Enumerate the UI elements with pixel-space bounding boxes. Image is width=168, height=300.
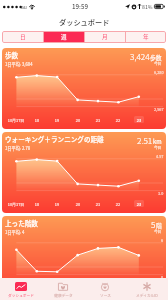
staticText: 今日 <box>154 145 162 150</box>
staticText: 20 <box>68 117 88 123</box>
staticText: 2.51 <box>137 134 153 146</box>
staticText: 21 <box>88 201 108 207</box>
button[interactable]: 週 <box>44 31 84 43</box>
staticText: 18 <box>27 117 47 123</box>
staticText: 21 <box>88 117 108 123</box>
staticText: ウォーキング＋ランニングの距離 <box>5 134 104 144</box>
staticText: 81% <box>142 3 153 11</box>
staticText: 23 <box>129 117 149 123</box>
staticText: 1日平均: 4 <box>5 229 25 235</box>
staticText: 健康データ <box>54 293 73 298</box>
staticText: 10月17日 <box>6 285 26 291</box>
button[interactable]: 4.57 <box>2 132 166 213</box>
button[interactable]: 日 <box>2 31 43 43</box>
button[interactable]: ソース <box>84 278 126 300</box>
staticText: 19 <box>47 285 67 291</box>
staticText: 22 <box>108 117 128 123</box>
staticText: 週 <box>61 33 67 41</box>
staticText: 19:59 <box>72 2 88 11</box>
staticText: メディカルID <box>136 293 158 298</box>
staticText: 1.0 <box>158 191 164 197</box>
staticText: 1日平均: 2.78 <box>5 145 31 151</box>
staticText: 6 <box>161 238 164 244</box>
staticText: 今日 <box>154 229 162 234</box>
staticText: 4.57 <box>156 154 164 160</box>
staticText: 19 <box>47 117 67 123</box>
button[interactable]: 6 <box>2 216 166 297</box>
staticText: 歩数 <box>5 50 19 60</box>
staticText: ダッシュボード <box>8 293 34 298</box>
staticText: 22 <box>108 201 128 207</box>
button[interactable]: ダッシュボード <box>0 278 42 300</box>
staticText: 21 <box>88 285 108 291</box>
staticText: 階 <box>156 221 162 229</box>
button[interactable]: 健康データ <box>42 278 84 300</box>
button[interactable]: 6,280 <box>2 48 166 129</box>
staticText: 今日 <box>154 61 162 66</box>
staticText: 18 <box>27 201 47 207</box>
staticText: 年 <box>143 33 149 41</box>
button[interactable]: 年 <box>126 31 166 43</box>
button[interactable]: メディカルID <box>126 278 168 300</box>
staticText: 1日平均: 3,604 <box>5 61 33 67</box>
button[interactable]: 月 <box>85 31 125 43</box>
staticText: 19 <box>47 201 67 207</box>
staticText: 上った階数 <box>5 218 38 228</box>
staticText: 6,280 <box>154 70 164 76</box>
staticText: 10月17日 <box>6 201 26 207</box>
staticText: 23 <box>129 201 149 207</box>
staticText: 月 <box>102 33 108 41</box>
staticText: 23 <box>129 285 149 291</box>
staticText: 5 <box>151 218 156 230</box>
staticText: ダッシュボード <box>59 17 110 27</box>
staticText: au <box>21 3 27 10</box>
staticText: 日 <box>20 33 26 41</box>
staticText: km <box>153 137 162 145</box>
staticText: 20 <box>68 201 88 207</box>
staticText: 22 <box>108 285 128 291</box>
staticText: 2,567 <box>154 107 164 113</box>
staticText: 0 <box>161 275 164 281</box>
staticText: 10月17日 <box>6 117 26 123</box>
staticText: ソース <box>100 293 111 298</box>
staticText: 歩数 <box>150 53 162 61</box>
staticText: 3,424 <box>130 50 150 62</box>
